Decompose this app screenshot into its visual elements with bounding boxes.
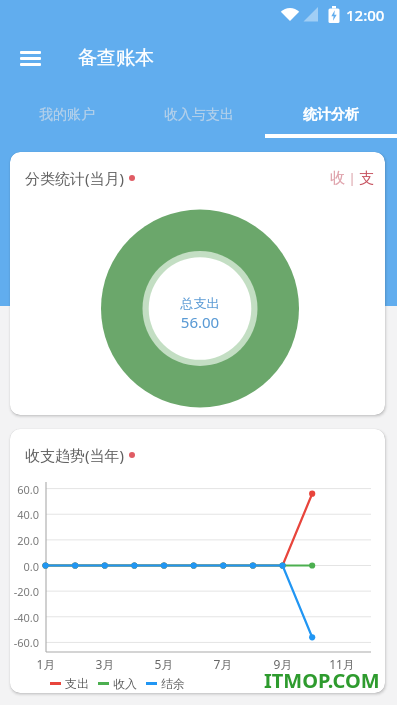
staticText: 支出: [65, 676, 89, 690]
staticText: |: [345, 169, 359, 187]
staticText: 备查账本: [78, 46, 154, 70]
staticText: 分类统计(当月): [25, 168, 125, 188]
button[interactable]: 支: [359, 169, 374, 188]
staticText: -20.0: [10, 584, 39, 599]
staticText: 1月: [26, 656, 66, 672]
staticText: 收: [330, 169, 345, 188]
staticText: 5月: [144, 656, 184, 672]
staticText: 收入与支出: [164, 106, 234, 124]
staticText: 支: [359, 169, 374, 188]
staticText: 结余: [161, 676, 185, 690]
staticText: 我的账户: [39, 106, 95, 124]
button[interactable]: 收入与支出: [133, 88, 265, 138]
staticText: 3月: [85, 656, 125, 672]
staticText: 收支趋势(当年): [25, 445, 125, 465]
staticText: ITMOP.COM: [264, 667, 380, 693]
staticText: 11月: [322, 656, 362, 672]
staticText: 总支出: [140, 295, 260, 311]
staticText: -60.0: [10, 635, 39, 650]
button[interactable]: 统计分析: [265, 88, 397, 138]
staticText: 0.0: [10, 559, 39, 574]
staticText: 56.00: [140, 312, 260, 332]
button[interactable]: 收: [330, 169, 345, 188]
staticText: 12:00: [346, 5, 385, 25]
staticText: 60.0: [10, 482, 39, 497]
staticText: 20.0: [10, 533, 39, 548]
staticText: -40.0: [10, 610, 39, 625]
staticText: 9月: [263, 656, 303, 672]
button[interactable]: [20, 51, 41, 66]
staticText: 7月: [203, 656, 243, 672]
button[interactable]: 我的账户: [0, 88, 133, 138]
staticText: 收入: [113, 676, 137, 690]
staticText: 40.0: [10, 507, 39, 522]
staticText: 统计分析: [303, 106, 359, 124]
